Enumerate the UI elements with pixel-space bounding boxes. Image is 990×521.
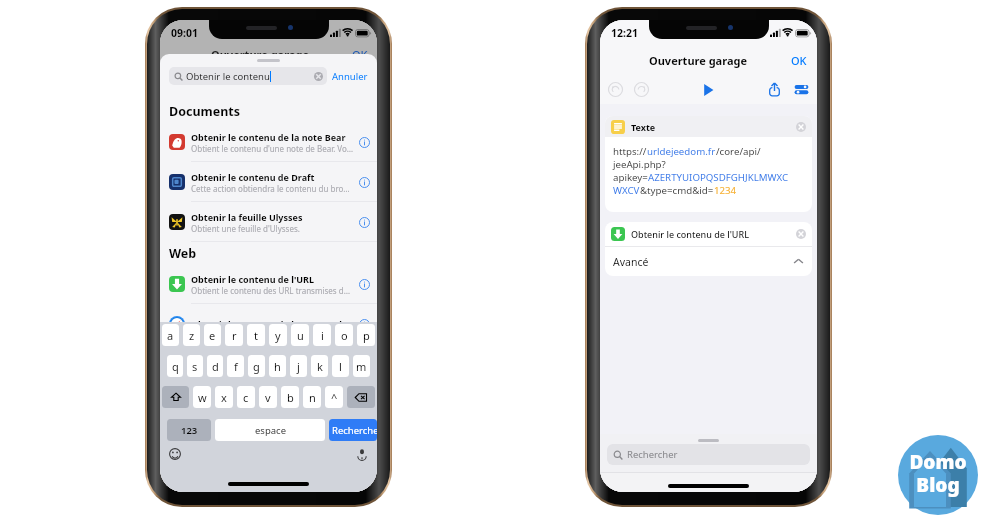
button[interactable]: f (227, 355, 244, 377)
staticText: jeeApi.php? (613, 158, 666, 171)
button[interactable]: h (269, 355, 286, 377)
staticText: &type=cmd&id= (640, 184, 714, 197)
button[interactable]: t (247, 324, 265, 346)
other: Info (359, 217, 370, 228)
button[interactable]: Obtenir le contenu de l'URL (605, 222, 812, 246)
staticText: x (221, 390, 227, 405)
staticText: Avancé (613, 255, 649, 269)
staticText: Rechercher (332, 424, 377, 437)
button[interactable]: Remove (796, 122, 806, 132)
staticText: j (297, 359, 300, 374)
staticText: urldejeedom.fr (647, 145, 716, 158)
button[interactable]: 123 (167, 419, 211, 441)
staticText: Domo (909, 449, 967, 475)
staticText: q (172, 359, 179, 374)
staticText: t (254, 328, 258, 343)
staticText: https:// (613, 145, 647, 158)
staticText: Ouverture garage (211, 47, 310, 62)
staticText: espace (255, 424, 286, 437)
button[interactable]: Undo (608, 82, 623, 97)
button[interactable]: Obtenir la feuille Ulysses (160, 202, 377, 242)
button[interactable]: w (193, 386, 211, 408)
button[interactable]: v (259, 386, 277, 408)
button[interactable]: l (332, 355, 349, 377)
button[interactable]: x (215, 386, 233, 408)
button[interactable]: y (269, 324, 287, 346)
staticText: 123 (181, 424, 198, 437)
button[interactable]: Avancé (605, 247, 812, 276)
staticText: Obtenir le contenu de Draft (191, 171, 315, 183)
button[interactable]: p (357, 324, 375, 346)
button[interactable]: Obtenir le contenu de la note Bear (160, 122, 377, 162)
staticText: Cette action obtiendra le contenu du bro… (191, 183, 354, 194)
button[interactable]: g (248, 355, 265, 377)
staticText: s (192, 359, 198, 374)
button[interactable]: s (187, 355, 203, 377)
button[interactable]: Obtenir le contenu (169, 67, 327, 85)
button[interactable]: r (225, 324, 243, 346)
staticText: Web (169, 245, 197, 262)
staticText: Obtenir le contenu (186, 70, 270, 83)
staticText: Obtient le contenu d'une note de Bear. V… (191, 143, 354, 154)
button[interactable]: ^ (325, 386, 343, 408)
button[interactable]: Annuler (332, 70, 368, 83)
staticText: Ouverture garage (649, 53, 748, 68)
staticText: ^ (331, 390, 338, 405)
staticText: 12:21 (611, 26, 638, 40)
button[interactable]: Run shortcut (700, 82, 716, 98)
button[interactable]: j (290, 355, 307, 377)
staticText: Texte (631, 121, 656, 133)
staticText: k (317, 359, 323, 374)
staticText: e (209, 328, 216, 343)
staticText: a (167, 328, 174, 343)
staticText: i (321, 328, 324, 343)
button[interactable]: a (162, 324, 179, 346)
staticText: Annuler (332, 70, 368, 83)
staticText: OK (352, 47, 368, 62)
other: Info (359, 319, 370, 330)
button[interactable]: Remove (796, 229, 806, 239)
staticText: Rechercher (627, 448, 678, 461)
button[interactable]: Obtenir le contenu de Draft (160, 162, 377, 202)
staticText: y (275, 328, 281, 343)
button[interactable]: Dictation (356, 448, 368, 460)
button[interactable]: Rechercher (329, 419, 377, 441)
staticText: AZERTYUIOPQSDFGHJKLMWXC (648, 171, 789, 184)
button[interactable]: Obtenir le contenu de l'URL (160, 264, 377, 304)
button[interactable]: Backspace (347, 386, 375, 408)
button[interactable]: b (281, 386, 299, 408)
button[interactable]: Emoji keyboard (169, 448, 181, 460)
button[interactable]: Redo (634, 82, 649, 97)
staticText: Obtenir le contenu de l'URL (631, 228, 749, 240)
button[interactable]: e (204, 324, 221, 346)
staticText: WXCV (613, 184, 640, 197)
button[interactable]: Share (767, 82, 782, 97)
button[interactable]: Obtenir le contenu de la page web (160, 304, 377, 344)
button[interactable]: espace (215, 419, 325, 441)
button[interactable]: Shortcut settings (794, 82, 809, 97)
button[interactable]: d (207, 355, 223, 377)
staticText: b (287, 390, 294, 405)
button[interactable]: q (167, 355, 183, 377)
button[interactable]: Shift (162, 386, 189, 408)
button[interactable]: u (291, 324, 309, 346)
staticText: z (189, 328, 195, 343)
staticText: Obtenir le contenu de la page web (191, 318, 345, 330)
staticText: v (265, 390, 271, 405)
button[interactable]: Rechercher (607, 444, 810, 465)
staticText: n (309, 390, 316, 405)
button[interactable]: OK (791, 53, 811, 68)
staticText: l (339, 359, 342, 374)
button[interactable]: m (353, 355, 370, 377)
other: Info (359, 279, 370, 290)
other: Info (359, 137, 370, 148)
button[interactable]: i (313, 324, 331, 346)
staticText: w (198, 390, 207, 405)
button[interactable]: z (183, 324, 200, 346)
button[interactable]: Texte (605, 116, 812, 137)
button[interactable]: c (237, 386, 255, 408)
button[interactable]: k (311, 355, 328, 377)
staticText: f (234, 359, 238, 374)
button[interactable]: o (335, 324, 353, 346)
button[interactable]: n (303, 386, 321, 408)
